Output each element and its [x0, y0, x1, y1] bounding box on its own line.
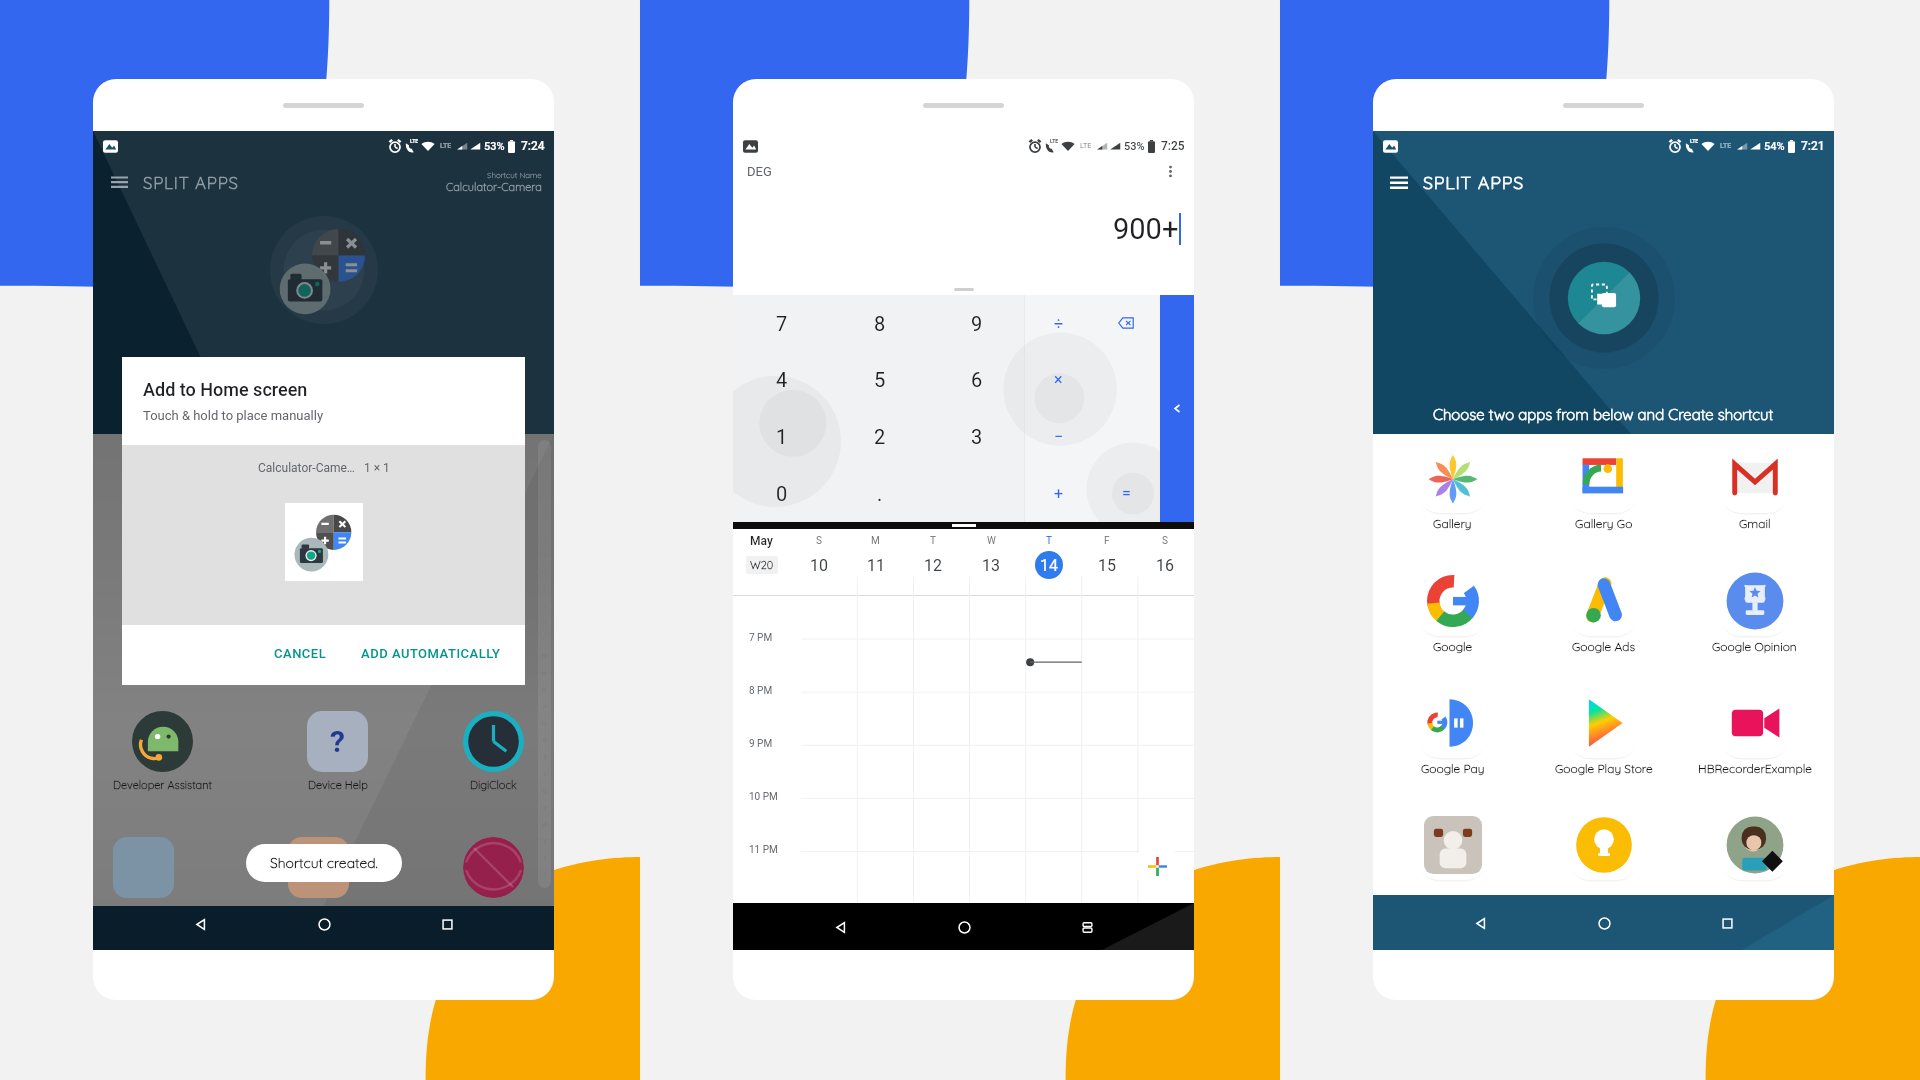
button[interactable]: ÷: [1025, 295, 1092, 351]
button[interactable]: 13: [962, 556, 1020, 575]
button[interactable]: [1092, 408, 1160, 465]
button[interactable]: Google Play Store: [1528, 685, 1679, 776]
button[interactable]: ×: [1025, 351, 1092, 408]
button[interactable]: 10: [790, 556, 847, 575]
button[interactable]: Google Opinion: [1679, 563, 1830, 654]
button[interactable]: 11: [847, 556, 904, 575]
button[interactable]: .: [831, 465, 928, 522]
button[interactable]: Menu: [1385, 168, 1413, 196]
button[interactable]: 9: [928, 295, 1025, 351]
staticText: T: [930, 535, 936, 547]
button[interactable]: Expand: [1160, 295, 1194, 522]
staticText: F: [1104, 535, 1110, 547]
button[interactable]: More options: [1160, 161, 1180, 181]
button[interactable]: Google Ads: [1528, 563, 1679, 654]
button[interactable]: 3: [928, 408, 1025, 465]
button[interactable]: Recents: [430, 907, 464, 941]
staticText: 53%: [484, 140, 505, 153]
button[interactable]: Open app: [113, 837, 174, 898]
button[interactable]: [1092, 351, 1160, 408]
staticText: 13: [982, 556, 1000, 575]
staticText: 0: [776, 482, 788, 505]
button[interactable]: 4: [733, 351, 831, 408]
button[interactable]: Menu: [105, 168, 133, 196]
staticText: 3: [971, 425, 983, 448]
button[interactable]: 7: [733, 295, 831, 351]
staticText: 1 × 1: [364, 461, 390, 475]
staticText: Device Help: [308, 778, 368, 792]
button[interactable]: ?: [307, 711, 368, 792]
button[interactable]: =: [1092, 465, 1160, 522]
button[interactable]: Home: [947, 910, 981, 944]
staticText: LTE: [1050, 138, 1059, 144]
button[interactable]: Gmail: [1679, 440, 1830, 531]
button[interactable]: 16: [1136, 556, 1194, 575]
staticText: Google Pay: [1421, 761, 1485, 776]
button[interactable]: 8: [831, 295, 928, 351]
button[interactable]: 5: [831, 351, 928, 408]
staticText: ADD AUTOMATICALLY: [361, 646, 501, 661]
staticText: Developer Assistant: [113, 778, 212, 792]
staticText: 9 PM: [749, 738, 773, 750]
button[interactable]: 0: [733, 465, 831, 522]
button[interactable]: Create event: [1134, 843, 1180, 889]
button[interactable]: 1: [733, 408, 831, 465]
button[interactable]: CANCEL: [264, 640, 337, 667]
button[interactable]: Developer Assistant: [113, 711, 212, 792]
button[interactable]: 2: [831, 408, 928, 465]
staticText: Gallery Go: [1575, 516, 1633, 531]
button[interactable]: Google: [1377, 563, 1528, 654]
button[interactable]: Gallery: [1377, 440, 1528, 531]
button[interactable]: Back: [1463, 906, 1497, 940]
staticText: 11: [867, 556, 885, 575]
button[interactable]: 15: [1078, 556, 1136, 575]
button[interactable]: +: [1025, 465, 1092, 522]
staticText: 15: [1098, 556, 1116, 575]
staticText: Touch & hold to place manually: [143, 408, 324, 423]
staticText: 9: [971, 312, 983, 335]
button[interactable]: Open app: [288, 837, 349, 898]
staticText: 12: [924, 556, 942, 575]
staticText: Calculator-Camera: [446, 180, 542, 194]
staticText: 16: [1156, 556, 1174, 575]
staticText: 2: [874, 425, 886, 448]
button[interactable]: −: [1025, 408, 1092, 465]
button[interactable]: Gallery Go: [1528, 440, 1679, 531]
button[interactable]: Home: [1587, 906, 1621, 940]
button[interactable]: Google Pay: [1377, 685, 1528, 776]
button[interactable]: 6: [928, 351, 1025, 408]
button[interactable]: Back: [823, 910, 857, 944]
staticText: 14: [1040, 556, 1058, 575]
button[interactable]: Open Dribbble: [463, 837, 524, 898]
staticText: 6: [971, 368, 983, 391]
staticText: Gmail: [1739, 516, 1771, 531]
staticText: Calculator-Came…: [258, 461, 355, 475]
button[interactable]: Delete: [1092, 295, 1160, 351]
button[interactable]: Photo app: [1377, 807, 1528, 881]
button[interactable]: HBRecorderExample: [1679, 685, 1830, 776]
staticText: 8 PM: [749, 685, 773, 697]
button[interactable]: 14: [1020, 551, 1078, 579]
button[interactable]: Ideas app: [1528, 807, 1679, 881]
button[interactable]: Recents: [1070, 910, 1104, 944]
staticText: 53%: [1124, 140, 1145, 153]
button[interactable]: 12: [904, 556, 962, 575]
button[interactable]: Game app: [1679, 807, 1830, 881]
button[interactable]: DigiClock: [463, 711, 524, 792]
staticText: 7:25: [1161, 139, 1185, 153]
button[interactable]: ADD AUTOMATICALLY: [351, 640, 511, 667]
button[interactable]: Home: [307, 907, 341, 941]
staticText: 7 PM: [749, 632, 773, 644]
button[interactable]: Back: [183, 907, 217, 941]
button[interactable]: Recents: [1710, 906, 1744, 940]
staticText: Shortcut Name: [487, 170, 542, 180]
